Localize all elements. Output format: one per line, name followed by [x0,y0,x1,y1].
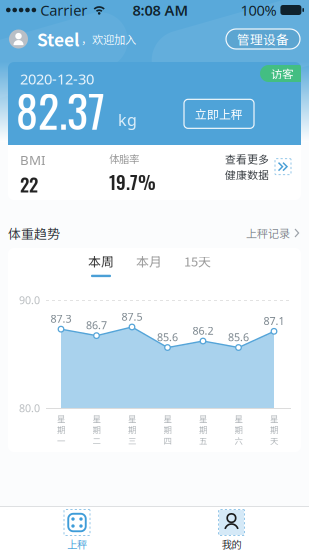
button[interactable]: 查看更多 健康数据 [225,151,291,182]
staticText: 本周 [88,251,114,270]
button[interactable]: 我的 [154,507,309,550]
staticText: 星 [92,412,100,425]
staticText: 2020-12-30 [20,69,94,88]
staticText: 90.0 [19,293,40,307]
staticText: 85.6 [157,330,178,344]
staticText: 四 [163,434,171,447]
staticText: 87.3 [50,312,71,326]
staticText: BMI [20,151,46,169]
button[interactable]: 访客 [260,65,301,82]
staticText: 22 [20,172,38,197]
staticText: 星 [57,412,65,425]
staticText: 本月 [136,251,162,270]
button[interactable]: 本月 [136,251,162,270]
staticText: 期 [270,423,278,436]
staticText: 期 [92,423,100,436]
staticText: 100% [240,0,276,20]
staticText: 86.2 [192,323,213,338]
staticText: 星 [163,412,171,425]
staticText: 星 [128,412,136,425]
staticText: 85.6 [228,330,249,344]
staticText: 星 [199,412,207,425]
staticText: 期 [199,423,207,436]
staticText: 星 [234,412,242,425]
button[interactable]: 上秤 [0,507,154,550]
staticText: 一 [57,434,65,447]
staticText: 体脂率 [109,151,139,166]
staticText: 上秤 [67,536,87,550]
staticText: 五 [199,434,207,447]
staticText: ，欢迎加入 [81,31,136,47]
button[interactable]: 管理设备 [226,29,300,49]
button[interactable]: 上秤记录 [246,225,300,241]
button[interactable]: 15天 [184,251,211,270]
staticText: 上秤记录 [246,225,290,241]
staticText: 期 [128,423,136,436]
staticText: 体重趋势 [8,224,60,242]
button[interactable]: 本周 [88,251,114,277]
staticText: kg [118,109,137,130]
staticText: 87.5 [121,309,142,324]
staticText: 我的 [221,536,241,550]
staticText: Steel [37,26,79,52]
staticText: 立即上秤 [195,105,243,122]
staticText: 六 [234,434,242,447]
staticText: 三 [128,434,136,447]
staticText: Carrier [40,0,87,20]
staticText: 二 [92,434,100,447]
staticText: 查看更多 健康数据 [225,151,269,182]
staticText: 天 [270,434,278,447]
staticText: 19.7% [109,169,156,194]
staticText: 82.37 [16,84,105,135]
staticText: 期 [163,423,171,436]
staticText: 86.7 [86,318,107,332]
staticText: 15天 [184,251,211,270]
staticText: 访客 [271,65,293,82]
staticText: 期 [57,423,65,436]
staticText: 87.1 [263,314,284,328]
staticText: 管理设备 [237,30,289,48]
staticText: 期 [234,423,242,436]
staticText: 星 [270,412,278,425]
staticText: 80.0 [19,401,40,415]
button[interactable]: 立即上秤 [184,99,254,128]
staticText: 8:08 AM [132,0,188,20]
